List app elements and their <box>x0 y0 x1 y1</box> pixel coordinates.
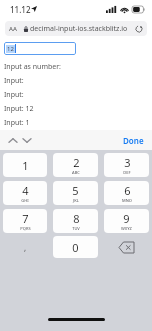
staticText: 3 <box>124 155 131 170</box>
staticText: AA <box>9 25 17 33</box>
staticText: 1 <box>22 158 29 173</box>
staticText: Done <box>123 135 144 146</box>
staticText: MNO <box>122 198 132 203</box>
button[interactable]: 1 <box>3 153 47 177</box>
staticText: GHI <box>21 198 29 203</box>
staticText: decimal-input-ios.stackblitz.io <box>30 24 128 34</box>
button[interactable]: Backspace <box>101 236 152 258</box>
staticText: Input: 1 <box>4 118 30 128</box>
staticText: 4 <box>22 183 29 198</box>
button[interactable]: 4 <box>3 181 47 205</box>
staticText: ABC <box>72 170 80 175</box>
staticText: 12 <box>7 45 14 53</box>
button[interactable]: 2 <box>53 153 98 177</box>
button[interactable]: Done <box>119 133 148 148</box>
button[interactable]: 6 <box>104 181 149 205</box>
staticText: PQRS <box>20 226 31 231</box>
staticText: WXYZ <box>121 226 132 231</box>
staticText: 2 <box>73 155 80 170</box>
button[interactable]: 3 <box>104 153 149 177</box>
staticText: Input: <box>4 90 24 100</box>
staticText: JKL <box>73 198 79 203</box>
staticText: 11.12 <box>10 4 31 15</box>
staticText: 5 <box>72 183 79 198</box>
button[interactable]: Previous field <box>6 132 20 148</box>
staticText: 9 <box>123 211 130 226</box>
staticText: 7 <box>22 211 29 226</box>
button[interactable]: Next field <box>20 132 34 148</box>
staticText: , <box>24 242 27 253</box>
button[interactable]: 7 <box>3 209 47 233</box>
staticText: Input: <box>4 76 24 86</box>
button[interactable]: 9 <box>104 209 149 233</box>
button[interactable]: 0 <box>53 236 98 258</box>
button[interactable]: 12 <box>4 42 76 55</box>
button[interactable]: AA <box>5 21 147 36</box>
button[interactable]: 8 <box>53 209 98 233</box>
staticText: TUV <box>72 226 80 231</box>
button[interactable]: 5 <box>53 181 98 205</box>
staticText: 8 <box>73 211 80 226</box>
staticText: Input as number: <box>4 62 61 72</box>
staticText: 6 <box>124 183 131 198</box>
staticText: DEF <box>123 170 131 175</box>
other: Reload <box>135 25 143 33</box>
staticText: 0 <box>72 240 79 255</box>
staticText: Input: 12 <box>4 104 34 114</box>
